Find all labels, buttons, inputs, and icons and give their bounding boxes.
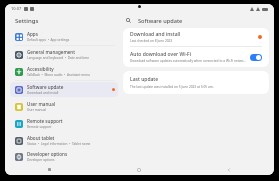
staticText: Download and install [130,31,181,38]
button[interactable]: Apps [10,29,118,44]
staticText: Apps [27,31,38,37]
staticText: Language and keyboard • Date and time [27,56,89,60]
button[interactable]: Software update [10,82,118,97]
staticText: Remote support [27,118,63,124]
button[interactable]: User manual [10,99,118,114]
staticText: Auto download over Wi-Fi [130,51,192,58]
staticText: Default apps • App settings [27,38,70,42]
button[interactable]: Home [94,164,184,175]
staticText: Accessibility [27,66,54,72]
staticText: Remote support [27,125,52,129]
staticText: Developer options [27,158,55,162]
staticText: User manual [27,101,56,107]
button[interactable]: Remote support [10,116,118,131]
staticText: User manual [27,108,47,112]
button[interactable]: Download and install [123,28,269,46]
staticText: Settings [15,17,39,25]
staticText: TalkBack • Mono audio • Assistant menu [27,73,91,77]
staticText: About tablet [27,135,55,141]
button[interactable]: Last update [123,71,269,94]
staticText: Download software updates automatically … [130,59,246,63]
button[interactable]: Back [184,164,274,175]
staticText: 10:07 [11,6,22,11]
button[interactable]: General management [10,47,118,62]
button[interactable]: Recents [5,164,94,175]
staticText: Developer options [27,151,68,157]
button[interactable]: Auto download over Wi-Fi toggle [250,54,262,61]
button[interactable]: Developer options [10,150,118,163]
staticText: Software update [138,17,183,25]
staticText: General management [27,49,76,55]
button[interactable]: Auto download over Wi-Fi [123,47,269,67]
staticText: Software update [27,84,64,90]
staticText: Download and install [27,91,59,95]
button[interactable]: Accessibility [10,64,118,79]
button[interactable]: About tablet [10,133,118,148]
staticText: Status • Legal information • Tablet name [27,142,91,146]
staticText: The last update was installed on 5 June … [130,85,214,89]
staticText: Last update [130,76,159,83]
button[interactable]: Search [123,15,134,26]
staticText: Last checked on 8 June 2023 [130,39,173,43]
